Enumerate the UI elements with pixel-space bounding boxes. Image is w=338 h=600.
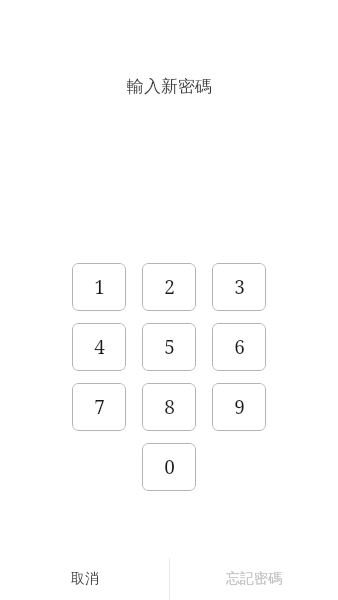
- staticText: 8: [164, 394, 175, 420]
- button[interactable]: 2: [142, 263, 196, 311]
- staticText: 7: [94, 394, 105, 420]
- button[interactable]: 1: [72, 263, 126, 311]
- staticText: 4: [94, 334, 105, 360]
- button[interactable]: 8: [142, 383, 196, 431]
- button[interactable]: 9: [212, 383, 266, 431]
- staticText: 取消: [71, 570, 99, 588]
- staticText: 9: [234, 394, 245, 420]
- staticText: 1: [94, 274, 105, 300]
- button[interactable]: 3: [212, 263, 266, 311]
- staticText: 輸入新密碼: [127, 76, 212, 97]
- staticText: 3: [234, 274, 245, 300]
- button[interactable]: 6: [212, 323, 266, 371]
- staticText: 5: [164, 334, 175, 360]
- button[interactable]: 0: [142, 443, 196, 491]
- staticText: 0: [164, 454, 175, 480]
- staticText: 6: [234, 334, 245, 360]
- staticText: 忘記密碼: [226, 570, 282, 588]
- button[interactable]: 7: [72, 383, 126, 431]
- button[interactable]: 忘記密碼: [170, 558, 338, 600]
- button[interactable]: 取消: [0, 558, 169, 600]
- staticText: 2: [164, 274, 175, 300]
- button[interactable]: 5: [142, 323, 196, 371]
- button[interactable]: 4: [72, 323, 126, 371]
